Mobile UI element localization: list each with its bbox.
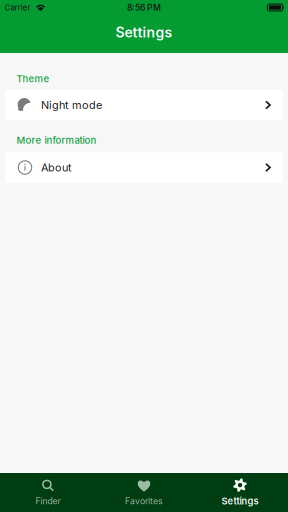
staticText: More information [16,134,96,146]
button[interactable]: About [5,152,283,182]
button[interactable]: Settings [192,473,288,512]
staticText: Night mode [41,98,102,111]
staticText: Settings [115,24,172,41]
staticText: Carrier [4,3,30,12]
button[interactable]: Night mode [5,90,283,120]
button[interactable]: Favorites [96,473,192,512]
staticText: Finder [35,496,60,506]
staticText: Theme [16,73,49,84]
staticText: Favorites [125,496,163,506]
staticText: 8:56 PM [127,2,161,13]
button[interactable]: Finder [0,473,96,512]
staticText: Settings [221,495,258,507]
staticText: About [41,161,72,174]
